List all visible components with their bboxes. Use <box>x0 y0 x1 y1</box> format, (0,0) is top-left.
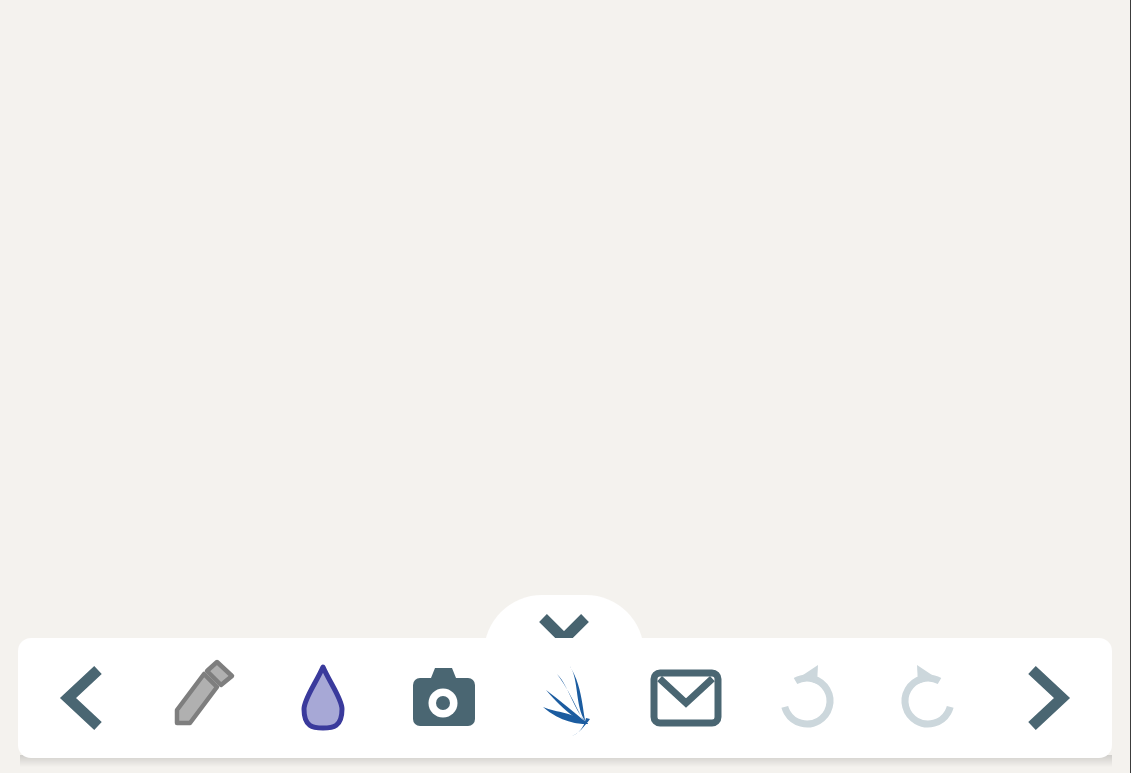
button[interactable]: Collapse toolbar <box>484 595 644 653</box>
button[interactable]: Redo <box>889 659 967 737</box>
button[interactable]: Ink <box>284 659 362 737</box>
button[interactable]: Edit <box>163 659 241 737</box>
button[interactable]: App logo <box>526 659 604 737</box>
button[interactable]: Forward <box>1010 659 1088 737</box>
button[interactable]: Back <box>42 659 120 737</box>
button[interactable]: Undo <box>768 659 846 737</box>
button[interactable]: Mail <box>647 659 725 737</box>
button[interactable]: Camera <box>405 659 483 737</box>
